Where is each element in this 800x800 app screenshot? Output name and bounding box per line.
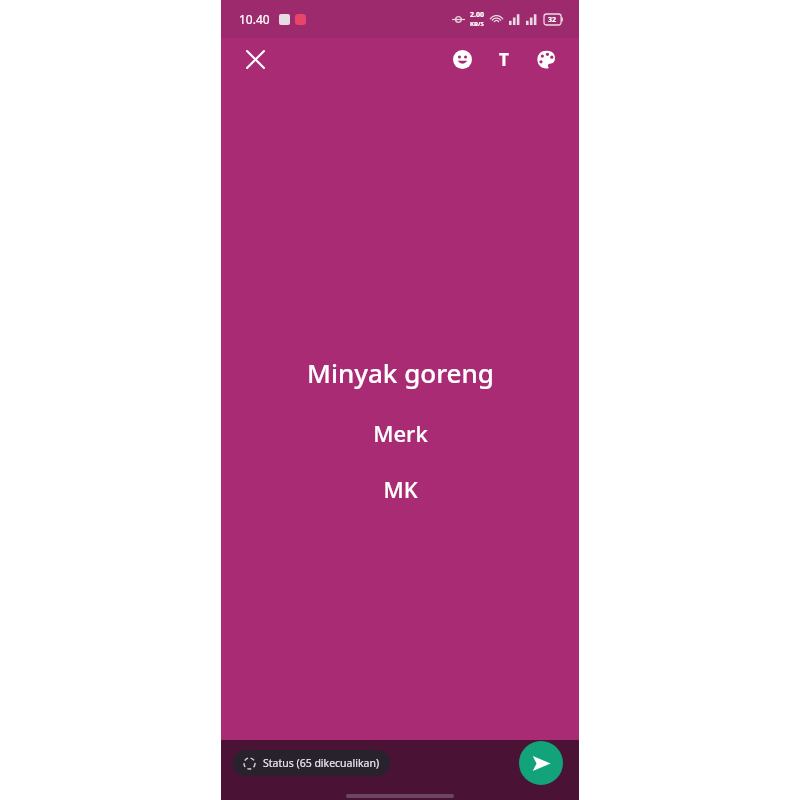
staticText: 10.40 <box>239 11 270 27</box>
staticText: Merk <box>373 418 428 448</box>
staticText: KB/S <box>470 20 484 28</box>
button[interactable]: Close <box>237 41 273 77</box>
button[interactable]: Status (65 dikecualikan) <box>233 750 390 776</box>
staticText: T <box>499 48 509 71</box>
button[interactable]: Background colour <box>527 40 565 78</box>
staticText: 32 <box>548 15 557 25</box>
staticText: 2.00 <box>470 10 484 20</box>
staticText: MK <box>383 474 418 504</box>
button[interactable]: Font <box>485 40 523 78</box>
staticText: Minyak goreng <box>307 355 494 390</box>
button[interactable]: Send <box>519 741 563 785</box>
button[interactable]: Emoji <box>443 40 481 78</box>
staticText: Status (65 dikecualikan) <box>263 756 380 770</box>
